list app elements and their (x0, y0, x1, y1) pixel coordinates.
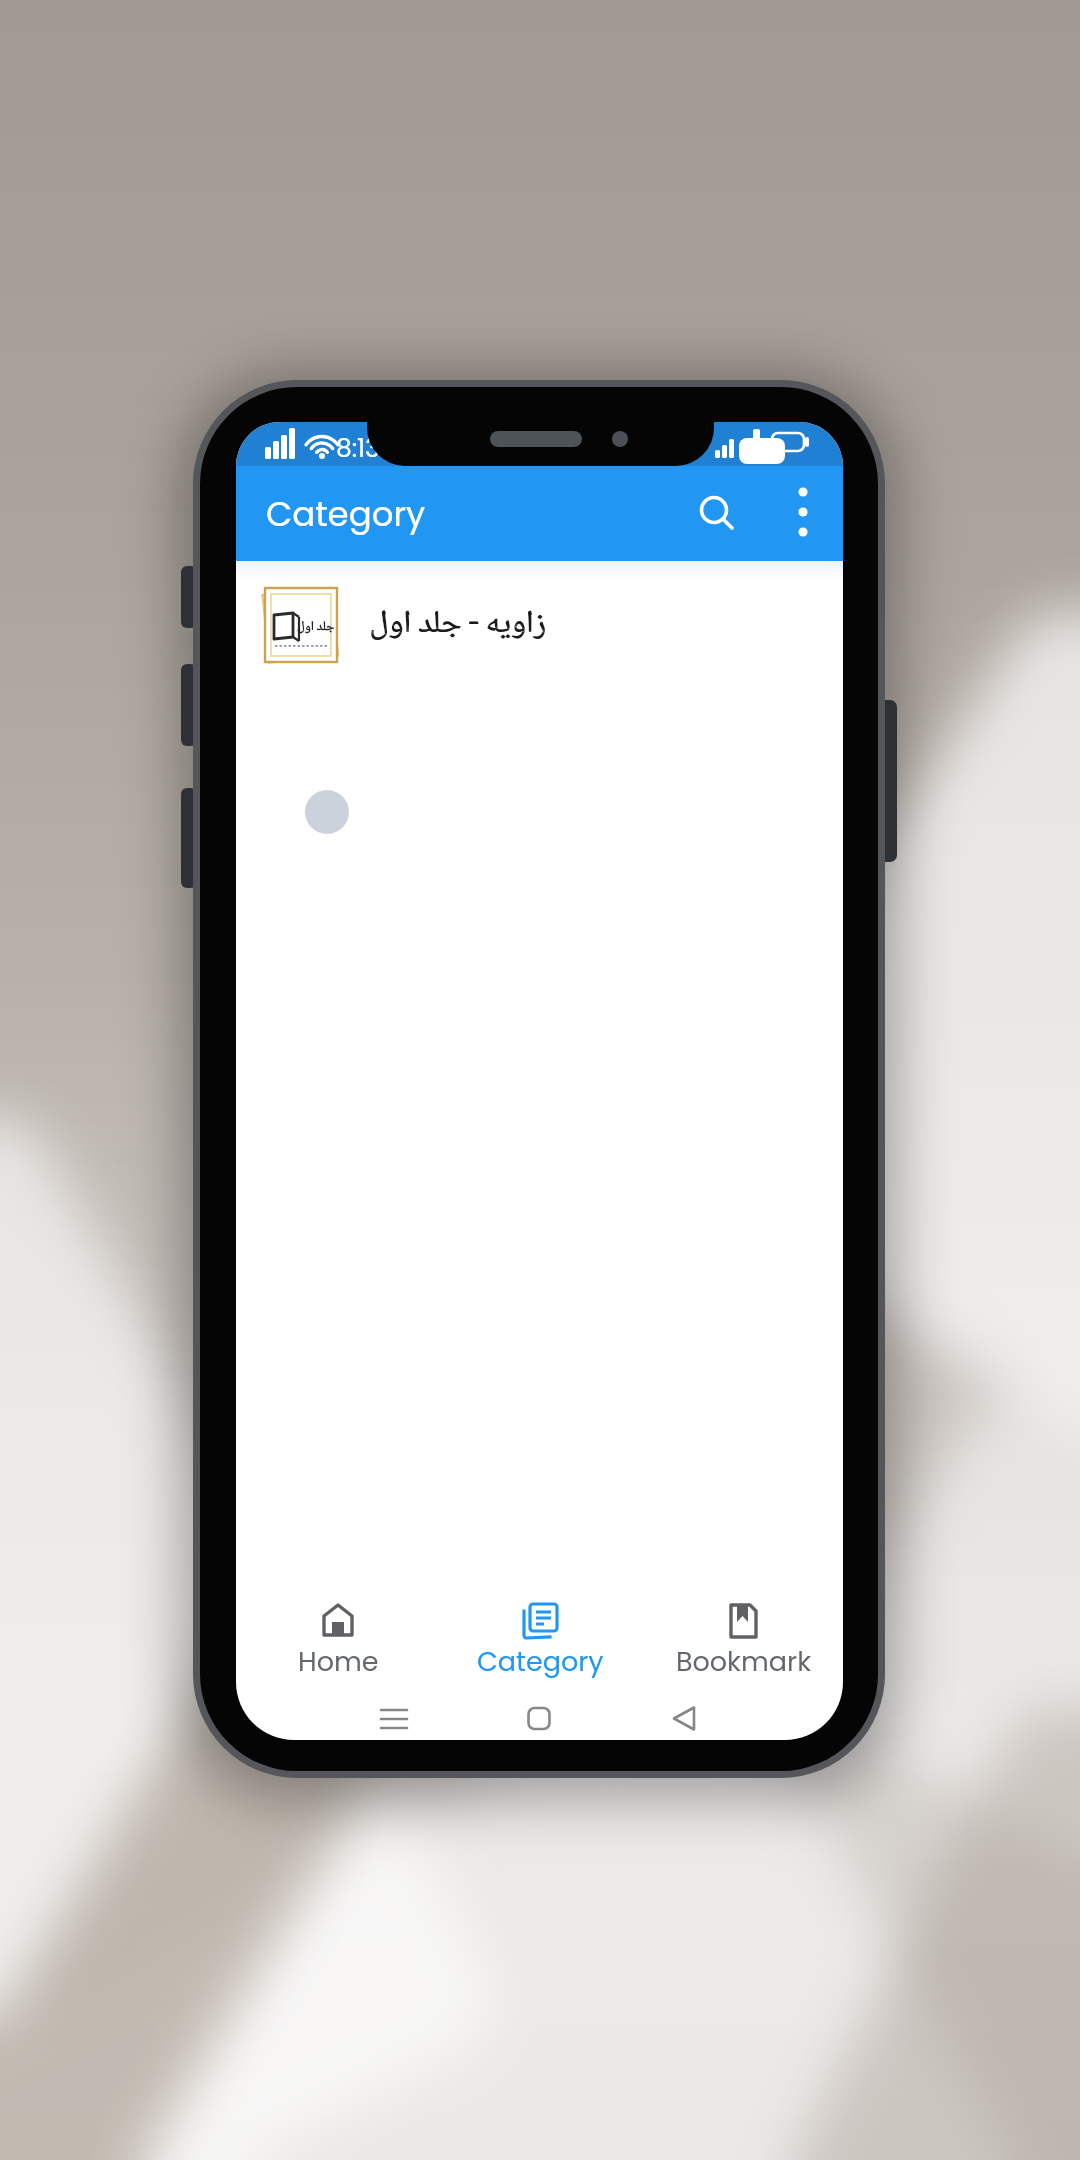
staticText: Category (266, 490, 426, 538)
button[interactable] (305, 790, 349, 834)
button[interactable]: Home (248, 1584, 428, 1689)
staticText: جلد اول (297, 616, 335, 638)
button[interactable]: Bookmark (654, 1584, 834, 1689)
button[interactable]: جلد اول (236, 572, 843, 678)
button[interactable] (644, 1684, 724, 1740)
staticText: زاویه - جلد اول (369, 598, 546, 652)
staticText: زاویه - جلد اول (370, 598, 547, 652)
button[interactable] (499, 1684, 579, 1740)
button[interactable]: Category (450, 1584, 630, 1689)
staticText: Bookmark (676, 1643, 812, 1681)
button[interactable] (354, 1684, 434, 1740)
button[interactable] (770, 479, 836, 545)
staticText: Home (298, 1643, 379, 1681)
staticText: 8:13 (336, 431, 380, 466)
staticText: Category (477, 1643, 604, 1681)
button[interactable] (681, 479, 747, 545)
